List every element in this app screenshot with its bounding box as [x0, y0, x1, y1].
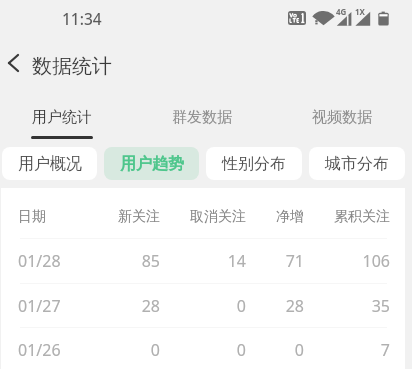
button[interactable]: 城市分布 — [309, 147, 405, 180]
staticText: 0 — [294, 339, 304, 361]
staticText: 视频数据 — [312, 108, 372, 127]
staticText: 用户统计 — [32, 108, 92, 127]
staticText: 用户趋势 — [120, 154, 184, 174]
button[interactable]: 视频数据 — [292, 100, 392, 145]
staticText: 性别分布 — [222, 154, 286, 174]
staticText: 日期 — [18, 208, 46, 226]
staticText: 28 — [285, 295, 304, 317]
button[interactable]: 用户趋势 — [104, 147, 199, 180]
staticText: 城市分布 — [325, 154, 389, 174]
staticText: 71 — [285, 250, 304, 272]
button[interactable]: 用户统计 — [12, 100, 112, 145]
staticText: 106 — [362, 250, 390, 272]
staticText: 14 — [227, 250, 246, 272]
staticText: 7 — [380, 339, 390, 361]
button[interactable]: 性别分布 — [206, 147, 302, 180]
staticText: 35 — [371, 295, 390, 317]
staticText: 01/28 — [18, 250, 61, 272]
staticText: 用户概况 — [18, 154, 82, 174]
staticText: 0 — [150, 339, 160, 361]
staticText: 新关注 — [118, 208, 160, 226]
staticText: 4G — [336, 6, 347, 17]
button[interactable]: 用户概况 — [2, 147, 97, 180]
staticText: 群发数据 — [172, 108, 232, 127]
staticText: 净增 — [276, 208, 304, 226]
button[interactable]: 群发数据 — [152, 100, 252, 145]
staticText: 28 — [141, 295, 160, 317]
staticText: 11:34 — [62, 8, 102, 29]
staticText: 01/27 — [18, 295, 61, 317]
staticText: 0 — [236, 339, 246, 361]
staticText: 01/26 — [18, 339, 61, 361]
staticText: 85 — [141, 250, 160, 272]
staticText: 累积关注 — [334, 208, 390, 226]
staticText: 取消关注 — [190, 208, 246, 226]
staticText: 数据统计 — [32, 54, 112, 79]
button[interactable]: Back — [0, 50, 26, 76]
staticText: 0 — [236, 295, 246, 317]
staticText: 1X — [355, 6, 365, 17]
